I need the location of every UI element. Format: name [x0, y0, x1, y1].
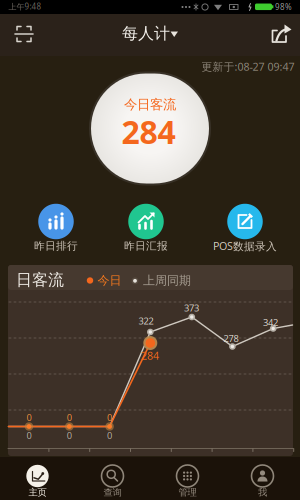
staticText: 更新于:08-27 09:47	[201, 59, 294, 74]
staticText: POS数据录入	[213, 239, 277, 253]
staticText: 0	[67, 429, 72, 442]
staticText: 0	[67, 411, 72, 424]
staticText: 322	[138, 315, 153, 327]
staticText: 278	[223, 332, 238, 345]
staticText: 日客流	[16, 270, 64, 290]
staticText: 284	[121, 110, 175, 153]
button[interactable]: 每人计	[115, 19, 185, 49]
staticText: 上周同期	[143, 273, 191, 288]
staticText: 查询	[103, 487, 121, 498]
staticText: 管理	[178, 487, 196, 498]
staticText: 373	[184, 302, 199, 314]
button[interactable]: 管理	[150, 457, 225, 500]
staticText: 昨日汇报	[124, 239, 168, 252]
button[interactable]: 分享	[265, 19, 295, 49]
button[interactable]: 查询	[75, 457, 150, 500]
button[interactable]: 昨日汇报	[101, 194, 191, 254]
staticText: 0	[107, 429, 112, 442]
staticText: 0	[107, 411, 112, 424]
button[interactable]: 我	[225, 457, 300, 500]
staticText: 今日	[97, 273, 121, 288]
staticText: 主页	[28, 487, 46, 498]
button[interactable]: POS数据录入	[200, 194, 290, 254]
staticText: 342	[263, 316, 278, 329]
staticText: 今日客流	[124, 96, 176, 113]
button[interactable]: 主页	[0, 457, 75, 500]
staticText: 284	[141, 348, 159, 363]
staticText: 昨日排行	[34, 239, 78, 252]
staticText: 98%	[275, 2, 292, 12]
staticText: 0	[26, 429, 31, 442]
button[interactable]: 扫一扫	[7, 19, 41, 49]
staticText: 上午9:48	[8, 1, 41, 12]
button[interactable]: 昨日排行	[11, 194, 101, 254]
staticText: 我	[258, 487, 267, 498]
staticText: 0	[26, 411, 31, 424]
staticText: 每人计	[122, 24, 170, 43]
